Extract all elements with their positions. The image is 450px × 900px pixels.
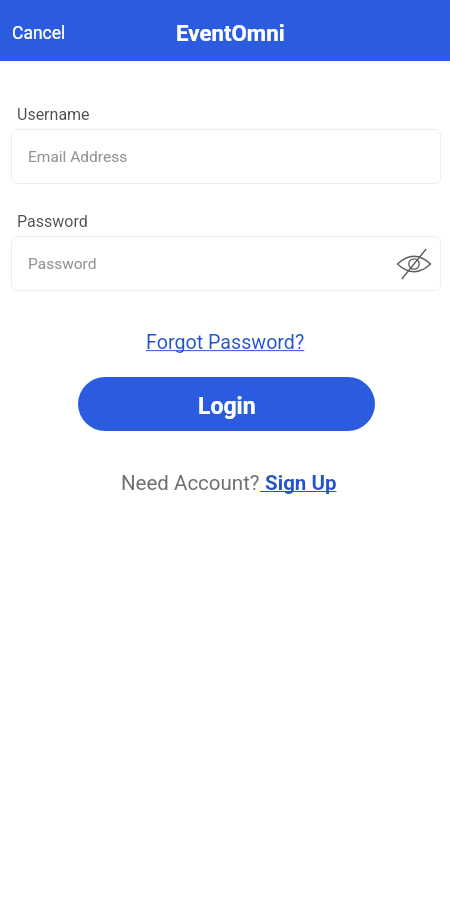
button[interactable]: Cancel [0, 13, 78, 54]
staticText: Password [28, 255, 97, 273]
staticText: Login [198, 393, 256, 420]
staticText: Email Address [28, 148, 128, 166]
staticText: Sign Up [260, 471, 337, 495]
staticText: Need Account? [121, 471, 260, 495]
staticText: Password [17, 212, 88, 231]
button[interactable]: Sign Up [260, 471, 337, 495]
button[interactable]: Password [11, 236, 441, 291]
staticText: EventOmni [176, 20, 285, 46]
button[interactable]: Email Address [11, 129, 441, 184]
button[interactable]: Login [78, 377, 375, 431]
button[interactable]: Forgot Password? [142, 329, 309, 356]
staticText: Forgot Password? [146, 331, 305, 354]
button[interactable]: Show password [395, 245, 433, 283]
staticText: Username [17, 105, 90, 124]
staticText: Cancel [12, 23, 66, 44]
